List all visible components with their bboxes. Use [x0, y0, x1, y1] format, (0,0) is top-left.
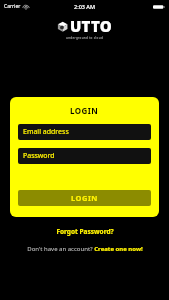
staticText: LOGIN [71, 193, 98, 203]
staticText: LOGIN [70, 105, 99, 116]
button[interactable]: Email address [18, 124, 151, 140]
staticText: Email address [23, 127, 69, 137]
button[interactable]: Password [18, 148, 151, 164]
other: Wifi signal [23, 4, 29, 10]
button[interactable]: Forgot Password? [0, 227, 169, 236]
staticText: UTTO [70, 16, 112, 36]
other: Battery [153, 4, 165, 10]
staticText: Forgot Password? [56, 227, 114, 236]
button[interactable]: Don't have an account? Create one now! [0, 245, 169, 253]
staticText: Carrier [4, 3, 21, 10]
staticText: 2:03 AM [74, 3, 96, 10]
button[interactable]: LOGIN [18, 190, 151, 206]
staticText: Don't have an account? Create one now! [27, 245, 143, 253]
staticText: Password [23, 151, 55, 161]
staticText: underground to cloud [66, 36, 104, 40]
